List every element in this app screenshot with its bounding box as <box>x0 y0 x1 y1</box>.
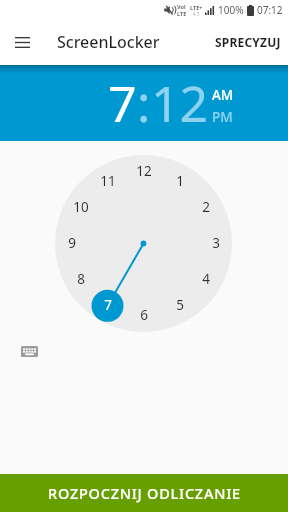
button[interactable]: Switch to keyboard input <box>17 342 42 361</box>
staticText: 3 <box>212 234 220 252</box>
button[interactable]: 4 <box>190 263 222 295</box>
staticText: 10 <box>73 198 89 216</box>
button[interactable]: 5 <box>164 289 196 321</box>
staticText: 100% <box>218 3 244 17</box>
staticText: 4 7 <box>193 11 200 17</box>
staticText: Vol <box>177 3 186 10</box>
staticText: ScreenLocker <box>57 31 160 53</box>
staticText: LTE+ <box>190 4 203 11</box>
button[interactable]: 12 <box>151 69 209 137</box>
staticText: 5 <box>176 296 184 314</box>
button[interactable]: 9 <box>56 227 88 259</box>
button[interactable]: 2 <box>190 191 222 223</box>
button[interactable]: 7 <box>92 289 124 321</box>
staticText: 2 <box>202 198 210 216</box>
button[interactable]: PM <box>212 108 233 126</box>
button[interactable]: AM <box>212 86 234 104</box>
staticText: 11 <box>100 172 116 190</box>
staticText: 7 <box>104 296 112 314</box>
staticText: PM <box>212 108 233 126</box>
staticText: 9 <box>68 234 76 252</box>
staticText: SPRECYZUJ <box>215 34 281 50</box>
button[interactable]: 6 <box>128 299 160 331</box>
staticText: 4 <box>202 270 210 288</box>
button[interactable]: 10 <box>65 191 97 223</box>
button[interactable]: ROZPOCZNIJ ODLICZANIE <box>0 474 288 512</box>
staticText: : <box>137 69 151 137</box>
button[interactable]: 11 <box>92 165 124 197</box>
staticText: 12 <box>136 162 152 180</box>
staticText: AM <box>212 86 234 104</box>
staticText: 1 <box>176 172 184 190</box>
staticText: ROZPOCZNIJ ODLICZANIE <box>48 483 241 503</box>
button[interactable]: 7 <box>108 69 137 137</box>
staticText: 07:12 <box>257 3 283 17</box>
button[interactable]: 3 <box>200 227 232 259</box>
button[interactable]: 8 <box>65 263 97 295</box>
staticText: LTE <box>177 10 187 17</box>
button[interactable]: 1 <box>164 165 196 197</box>
button[interactable]: 12 <box>128 155 160 187</box>
staticText: 8 <box>77 270 85 288</box>
button[interactable]: Open navigation drawer <box>7 27 37 57</box>
staticText: 6 <box>140 306 148 324</box>
button[interactable]: SPRECYZUJ <box>215 34 281 50</box>
